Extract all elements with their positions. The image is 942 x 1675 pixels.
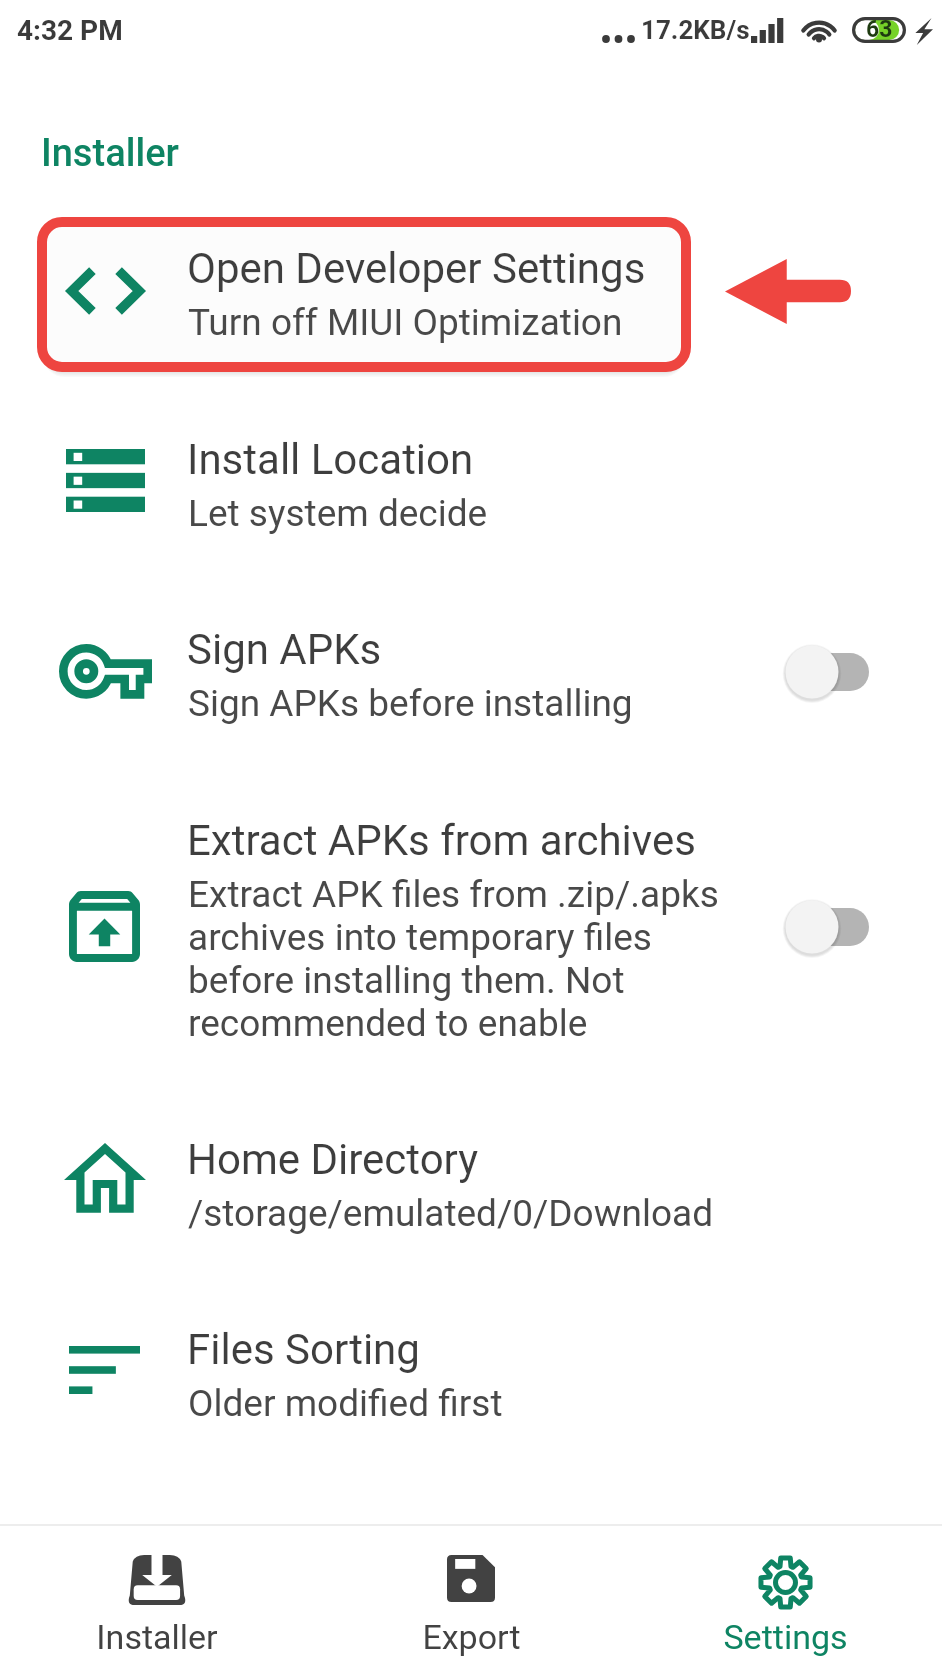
staticText: Turn off MIUI Optimization [188, 301, 753, 344]
staticText: Export [422, 1617, 521, 1657]
staticText: Home Directory [187, 1135, 479, 1184]
button[interactable]: Export [314, 1526, 628, 1675]
button[interactable]: Files Sorting [0, 1325, 942, 1417]
staticText: Files Sorting [187, 1325, 420, 1374]
staticText: Install Location [187, 435, 474, 484]
staticText: /storage/emulated/0/Download [188, 1192, 753, 1235]
staticText: Settings [723, 1617, 848, 1657]
button[interactable]: Install Location [0, 435, 942, 527]
staticText: Installer [96, 1617, 218, 1657]
staticText: Older modified first [188, 1382, 753, 1425]
staticText: Sign APKs before installing [188, 682, 753, 725]
button[interactable]: Settings [628, 1526, 942, 1675]
staticText: Open Developer Settings [187, 244, 646, 293]
staticText: Installer [41, 131, 179, 176]
other: Toggle [786, 899, 870, 955]
button[interactable]: Sign APKs [0, 625, 942, 717]
button[interactable]: Installer [0, 1526, 314, 1675]
other: Toggle [786, 644, 870, 700]
other: Pointer [725, 259, 851, 324]
staticText: Extract APK files from .zip/.apks archiv… [188, 873, 753, 1045]
staticText: 4:32 PM [17, 14, 123, 47]
button[interactable]: Open Developer Settings [0, 244, 942, 336]
button[interactable] [37, 217, 691, 372]
staticText: Extract APKs from archives [187, 816, 696, 865]
button[interactable]: Home Directory [0, 1135, 942, 1227]
staticText: Let system decide [188, 492, 753, 535]
button[interactable]: Extract APKs from archives [0, 816, 942, 1037]
staticText: 17.2KB/s [641, 15, 750, 45]
staticText: 63 [866, 16, 893, 42]
staticText: Sign APKs [187, 625, 382, 674]
